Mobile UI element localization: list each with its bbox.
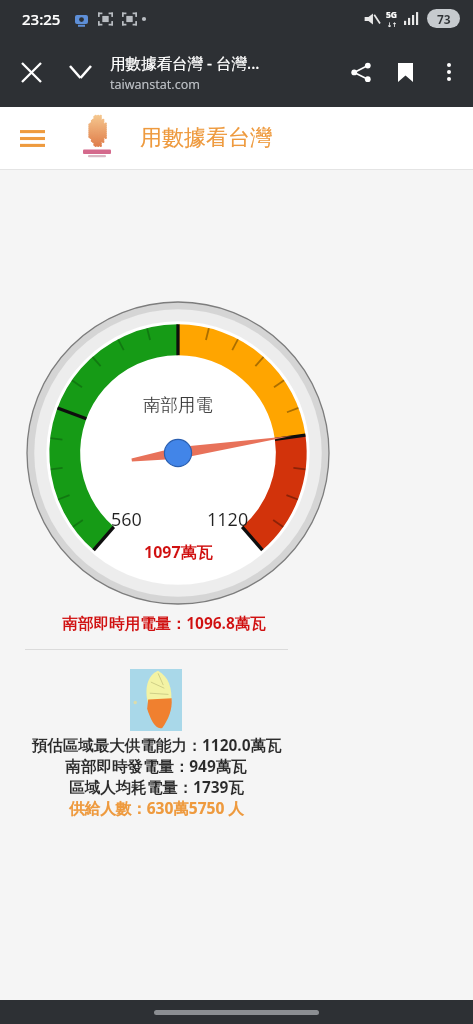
button[interactable]: More options <box>427 50 471 94</box>
button[interactable]: 用數據看台灣 - 台灣... <box>110 52 300 93</box>
staticText: 區域人均耗電量：1739瓦 <box>69 776 244 797</box>
staticText: taiwanstat.com <box>110 76 200 93</box>
staticText: 23:25 <box>22 9 61 29</box>
staticText: 用數據看台灣 - 台灣... <box>110 52 260 73</box>
button[interactable]: Bookmark <box>383 50 427 94</box>
staticText: 預估區域最大供電能力：1120.0萬瓦 <box>31 734 282 755</box>
staticText: 5G <box>386 9 398 21</box>
staticText: 用數據看台灣 <box>140 124 272 152</box>
staticText: ↓↑ <box>387 21 398 28</box>
staticText: 南部即時用電量：1096.8萬瓦 <box>62 612 266 633</box>
button[interactable]: Close <box>8 49 54 95</box>
staticText: 1097萬瓦 <box>144 541 213 563</box>
staticText: 1120 <box>207 507 249 532</box>
button[interactable]: Menu <box>8 114 56 162</box>
staticText: 南部用電 <box>143 394 213 416</box>
staticText: 560 <box>111 507 142 532</box>
staticText: 南部即時發電量：949萬瓦 <box>65 755 247 776</box>
button[interactable]: Collapse <box>57 49 103 95</box>
staticText: 供給人數：630萬5750 人 <box>69 797 244 818</box>
button[interactable]: Share <box>339 50 383 94</box>
staticText: 73 <box>437 11 451 27</box>
